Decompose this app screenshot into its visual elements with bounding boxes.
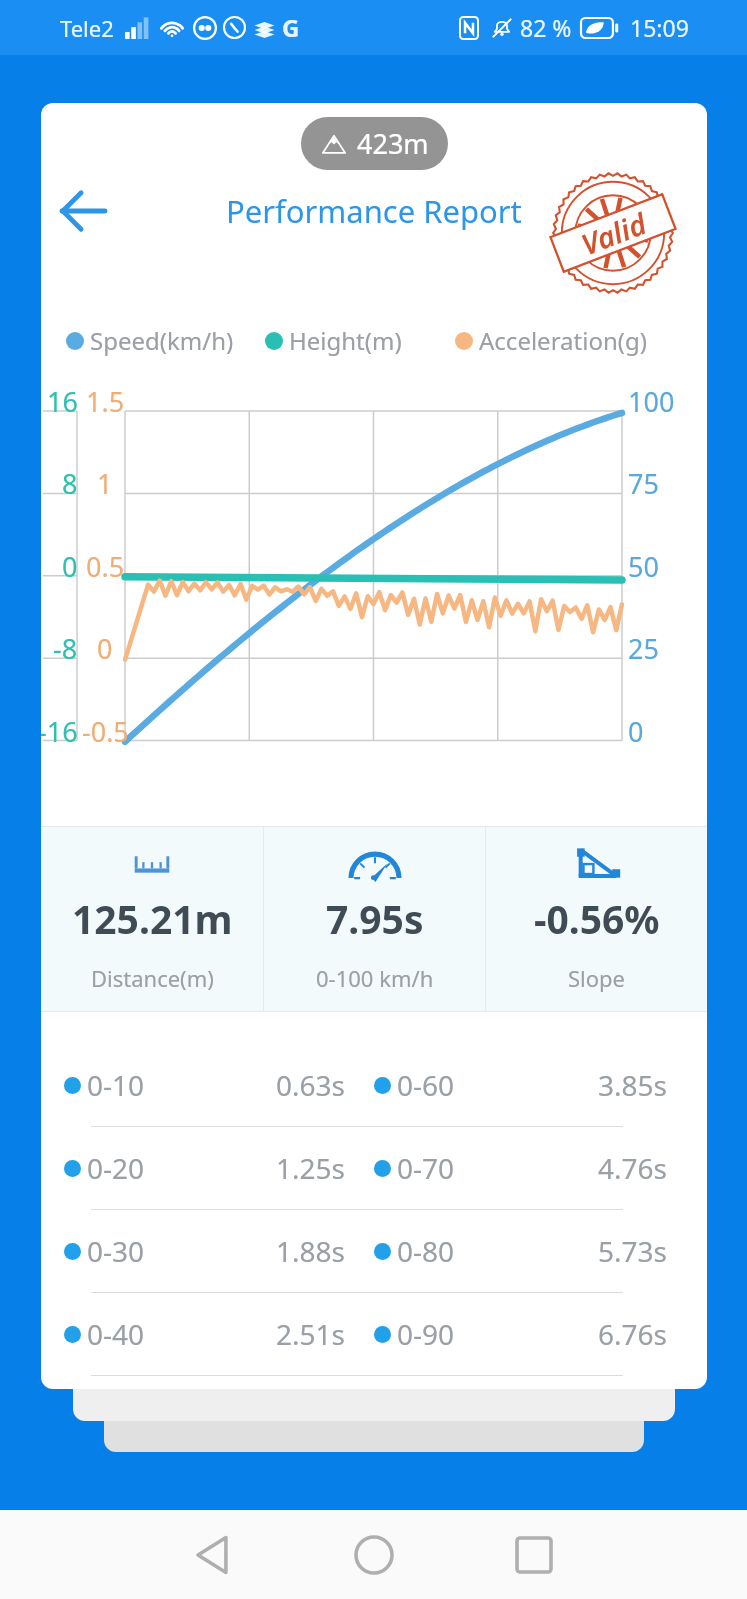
button[interactable]: 7.95s	[264, 826, 485, 1012]
staticText: 25	[628, 630, 659, 667]
button[interactable]: 125.21m	[41, 826, 263, 1012]
staticText: 15:09	[630, 12, 689, 43]
staticText: 50	[628, 548, 659, 585]
button[interactable]: Back	[55, 183, 111, 239]
staticText: 0-80	[397, 1232, 455, 1270]
staticText: 3.85s	[598, 1066, 667, 1104]
staticText: -16	[41, 713, 78, 750]
staticText: Performance Report	[226, 190, 522, 232]
staticText: 16	[47, 383, 78, 420]
staticText: 6.76s	[598, 1315, 667, 1353]
staticText: 0-20	[87, 1149, 145, 1187]
staticText: Valid	[575, 203, 652, 263]
button[interactable]: 0-10	[41, 1044, 707, 1126]
staticText: 4.76s	[598, 1149, 667, 1187]
staticText: 0	[62, 548, 78, 585]
staticText: -0.5	[82, 713, 129, 750]
staticText: -0.56%	[534, 892, 660, 945]
staticText: 0	[97, 630, 113, 667]
staticText: 125.21m	[72, 892, 233, 945]
staticText: 0-60	[397, 1066, 455, 1104]
staticText: Speed(km/h)	[90, 324, 234, 357]
staticText: Height(m)	[289, 324, 402, 357]
staticText: Distance(m)	[91, 963, 214, 993]
staticText: 1.25s	[276, 1149, 345, 1187]
staticText: 75	[628, 465, 659, 502]
staticText: 100	[628, 383, 675, 420]
button[interactable]: Home	[338, 1519, 410, 1591]
button[interactable]: 0-40	[41, 1293, 707, 1375]
staticText: Acceleration(g)	[479, 324, 647, 357]
staticText: 423m	[357, 125, 429, 162]
staticText: 0	[628, 713, 644, 750]
button[interactable]: 0-30	[41, 1210, 707, 1292]
staticText: 0-100 km/h	[316, 963, 434, 993]
staticText: Tele2	[60, 13, 114, 43]
staticText: 8	[62, 465, 78, 502]
button[interactable]: 0-20	[41, 1127, 707, 1209]
button[interactable]: -0.56%	[486, 826, 707, 1012]
staticText: 0.63s	[276, 1066, 345, 1104]
staticText: 1.5	[86, 383, 125, 420]
staticText: Slope	[568, 963, 626, 993]
staticText: G	[282, 11, 300, 44]
button[interactable]: Recents	[498, 1519, 570, 1591]
staticText: 0-30	[87, 1232, 145, 1270]
staticText: 0-70	[397, 1149, 455, 1187]
button[interactable]: 423m	[301, 117, 448, 170]
staticText: 7.95s	[326, 892, 424, 945]
staticText: 1.88s	[276, 1232, 345, 1270]
button[interactable]: Back	[177, 1519, 249, 1591]
staticText: 82 %	[520, 12, 572, 43]
staticText: -8	[53, 630, 78, 667]
staticText: 1	[97, 465, 113, 502]
staticText: 0-90	[397, 1315, 455, 1353]
staticText: 5.73s	[598, 1232, 667, 1270]
staticText: 0-10	[87, 1066, 145, 1104]
staticText: 2.51s	[276, 1315, 345, 1353]
staticText: 0-40	[87, 1315, 145, 1353]
staticText: 0.5	[86, 548, 125, 585]
